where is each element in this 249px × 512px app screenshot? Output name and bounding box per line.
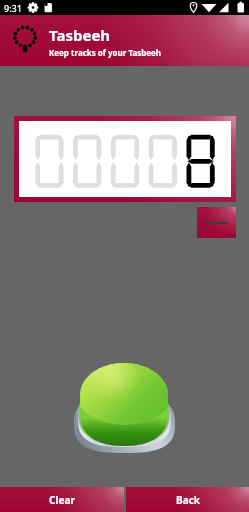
staticText: Clear <box>49 493 75 507</box>
button[interactable]: Increase count <box>68 360 190 462</box>
staticText: Keep tracks of your Tasbeeh <box>49 47 162 58</box>
button[interactable]: Clear <box>0 487 124 512</box>
staticText: Tasbeeh <box>49 25 111 45</box>
button[interactable]: Decrease count <box>197 207 236 238</box>
button[interactable]: Back <box>126 487 249 512</box>
staticText: Back <box>176 493 200 507</box>
staticText: 9:31 <box>4 2 22 14</box>
